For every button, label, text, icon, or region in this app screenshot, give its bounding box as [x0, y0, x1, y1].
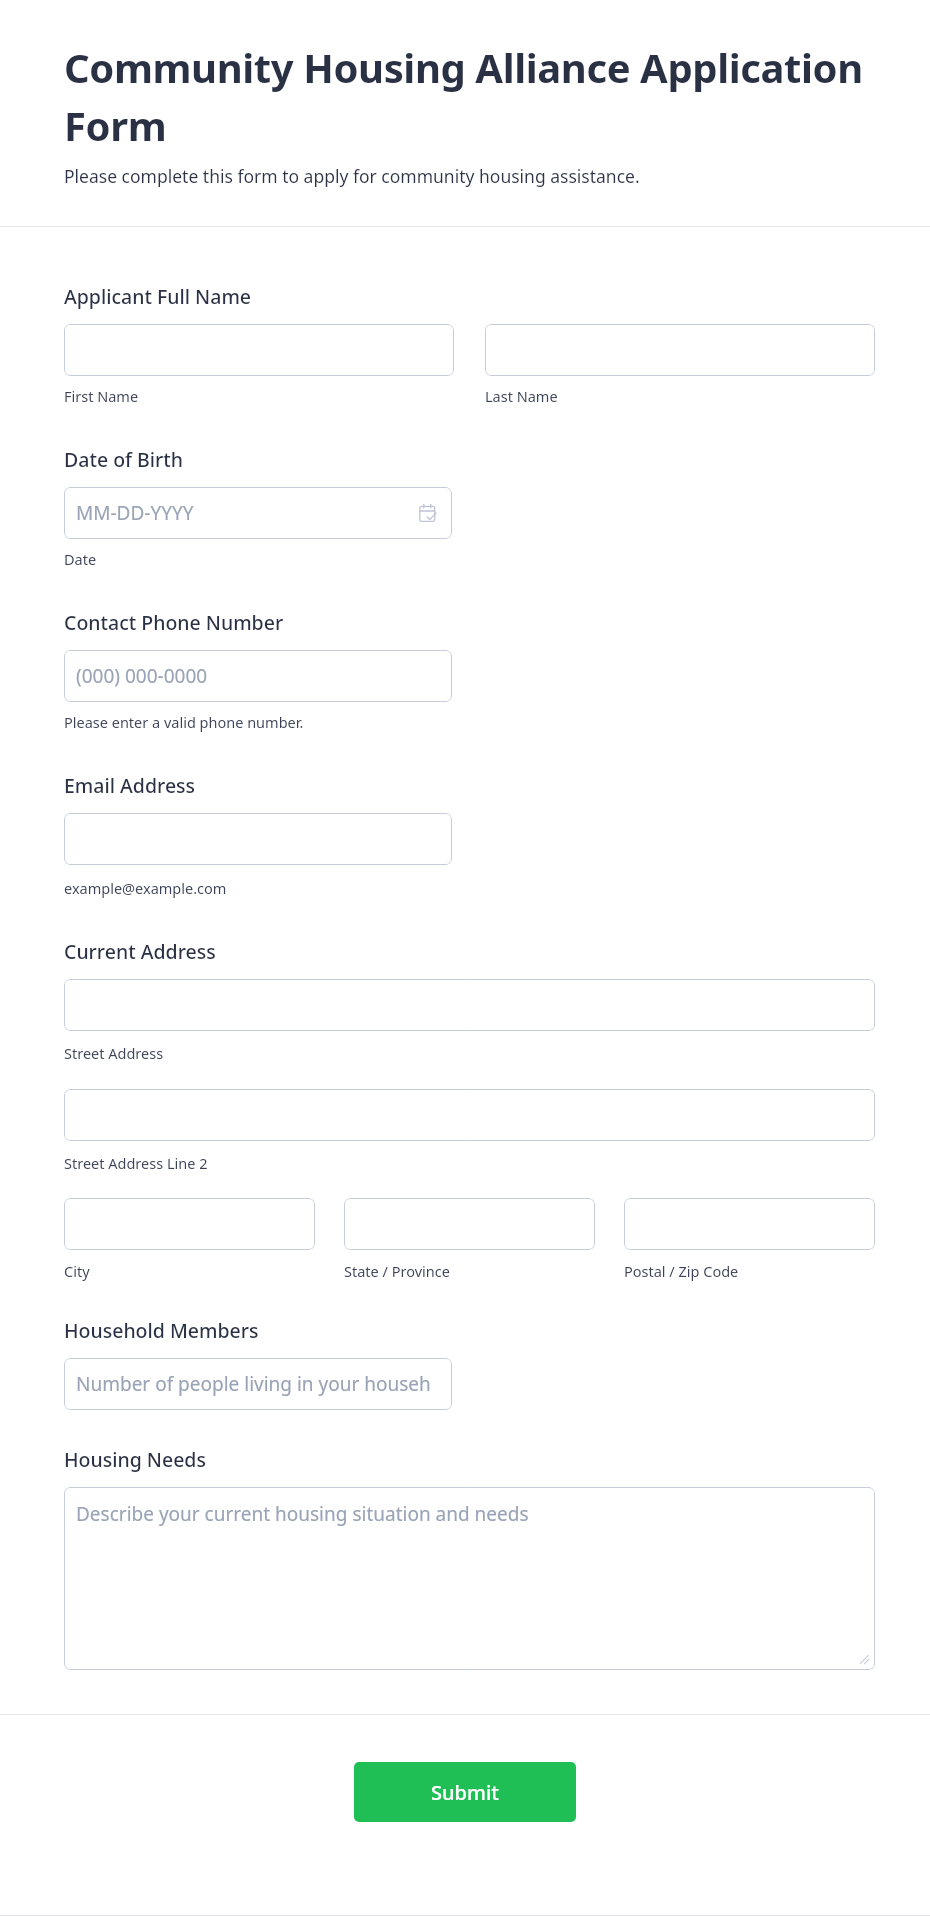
button[interactable]: City: [64, 1198, 315, 1250]
staticText: First Name: [64, 386, 139, 406]
staticText: Housing Needs: [64, 1446, 206, 1473]
staticText: Current Address: [64, 938, 216, 965]
staticText: Email Address: [64, 772, 196, 799]
button[interactable]: Submit: [354, 1762, 576, 1822]
button[interactable]: Last Name: [485, 324, 875, 376]
staticText: Community Housing Alliance Application F…: [64, 40, 864, 152]
staticText: State / Province: [344, 1261, 450, 1281]
button[interactable]: Street Address: [64, 979, 875, 1031]
staticText: City: [64, 1261, 90, 1281]
staticText: (000) 000-0000: [76, 663, 208, 689]
staticText: Household Members: [64, 1317, 259, 1344]
staticText: Last Name: [485, 386, 558, 406]
button[interactable]: Street Address Line 2: [64, 1089, 875, 1141]
button[interactable]: First Name: [64, 324, 454, 376]
button[interactable]: Contact Phone Number: [64, 650, 452, 702]
staticText: Please enter a valid phone number.: [64, 712, 304, 732]
button[interactable]: Email Address: [64, 813, 452, 865]
staticText: Submit: [431, 1779, 499, 1806]
staticText: Postal / Zip Code: [624, 1261, 739, 1281]
button[interactable]: State / Province: [344, 1198, 595, 1250]
staticText: Applicant Full Name: [64, 283, 252, 310]
button[interactable]: Postal / Zip Code: [624, 1198, 875, 1250]
staticText: Describe your current housing situation …: [76, 1501, 529, 1527]
staticText: MM-DD-YYYY: [76, 500, 194, 526]
staticText: Please complete this form to apply for c…: [64, 164, 640, 188]
button[interactable]: Household Members: [64, 1358, 452, 1410]
button[interactable]: Describe your current housing situation …: [64, 1487, 875, 1670]
staticText: example@example.com: [64, 878, 227, 898]
staticText: Number of people living in your househ: [76, 1371, 431, 1397]
button[interactable]: Date of Birth: [64, 487, 452, 539]
staticText: Date of Birth: [64, 446, 184, 473]
staticText: Street Address Line 2: [64, 1153, 208, 1173]
staticText: Contact Phone Number: [64, 609, 284, 636]
staticText: Street Address: [64, 1043, 164, 1063]
staticText: Date: [64, 549, 97, 569]
